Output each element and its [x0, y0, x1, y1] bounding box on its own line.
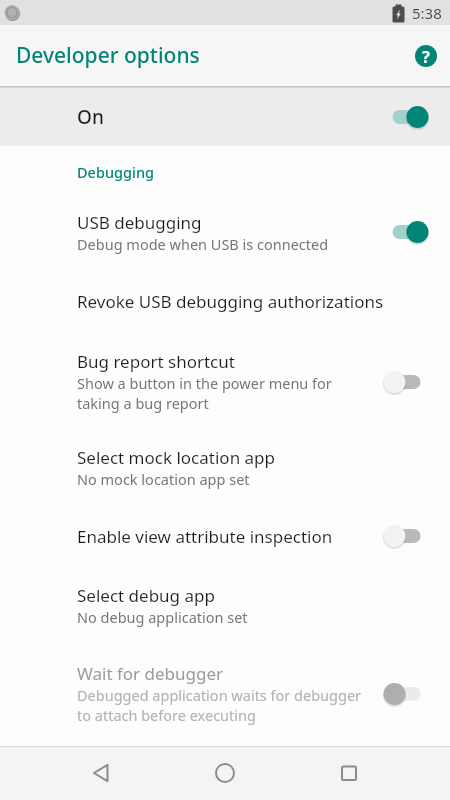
staticText: Select debug app — [77, 584, 215, 607]
staticText: Revoke USB debugging authorizations — [77, 290, 384, 313]
button[interactable]: Wait for debugger — [0, 657, 450, 730]
staticText: to attach before executing — [77, 705, 256, 725]
staticText: ? — [422, 45, 430, 67]
button[interactable]: Bug report shortcut — [0, 345, 450, 418]
staticText: Debugging — [77, 162, 154, 182]
staticText: No debug application set — [77, 607, 248, 627]
staticText: Bug report shortcut — [77, 350, 235, 373]
button[interactable]: Enable view attribute inspection — [0, 508, 450, 564]
button[interactable]: Revoke USB debugging authorizations — [0, 273, 450, 329]
staticText: No mock location app set — [77, 469, 250, 489]
staticText: taking a bug report — [77, 393, 209, 413]
staticText: Show a button in the power menu for — [77, 373, 332, 393]
staticText: Wait for debugger — [77, 662, 224, 685]
button[interactable]: ? — [415, 45, 437, 67]
staticText: Select mock location app — [77, 446, 275, 469]
button[interactable]: Select mock location app — [0, 435, 450, 500]
staticText: Developer options — [16, 41, 200, 70]
button[interactable]: On — [0, 88, 450, 146]
button[interactable] — [201, 749, 249, 797]
button[interactable] — [77, 749, 125, 797]
staticText: Debug mode when USB is connected — [77, 234, 329, 254]
staticText: Enable view attribute inspection — [77, 525, 333, 548]
button[interactable]: USB debugging — [0, 200, 450, 264]
button[interactable]: Select debug app — [0, 573, 450, 638]
staticText: USB debugging — [77, 211, 202, 234]
button[interactable] — [325, 749, 373, 797]
staticText: 5:38 — [412, 3, 442, 23]
staticText: On — [77, 104, 383, 130]
staticText: Debugged application waits for debugger — [77, 685, 362, 705]
